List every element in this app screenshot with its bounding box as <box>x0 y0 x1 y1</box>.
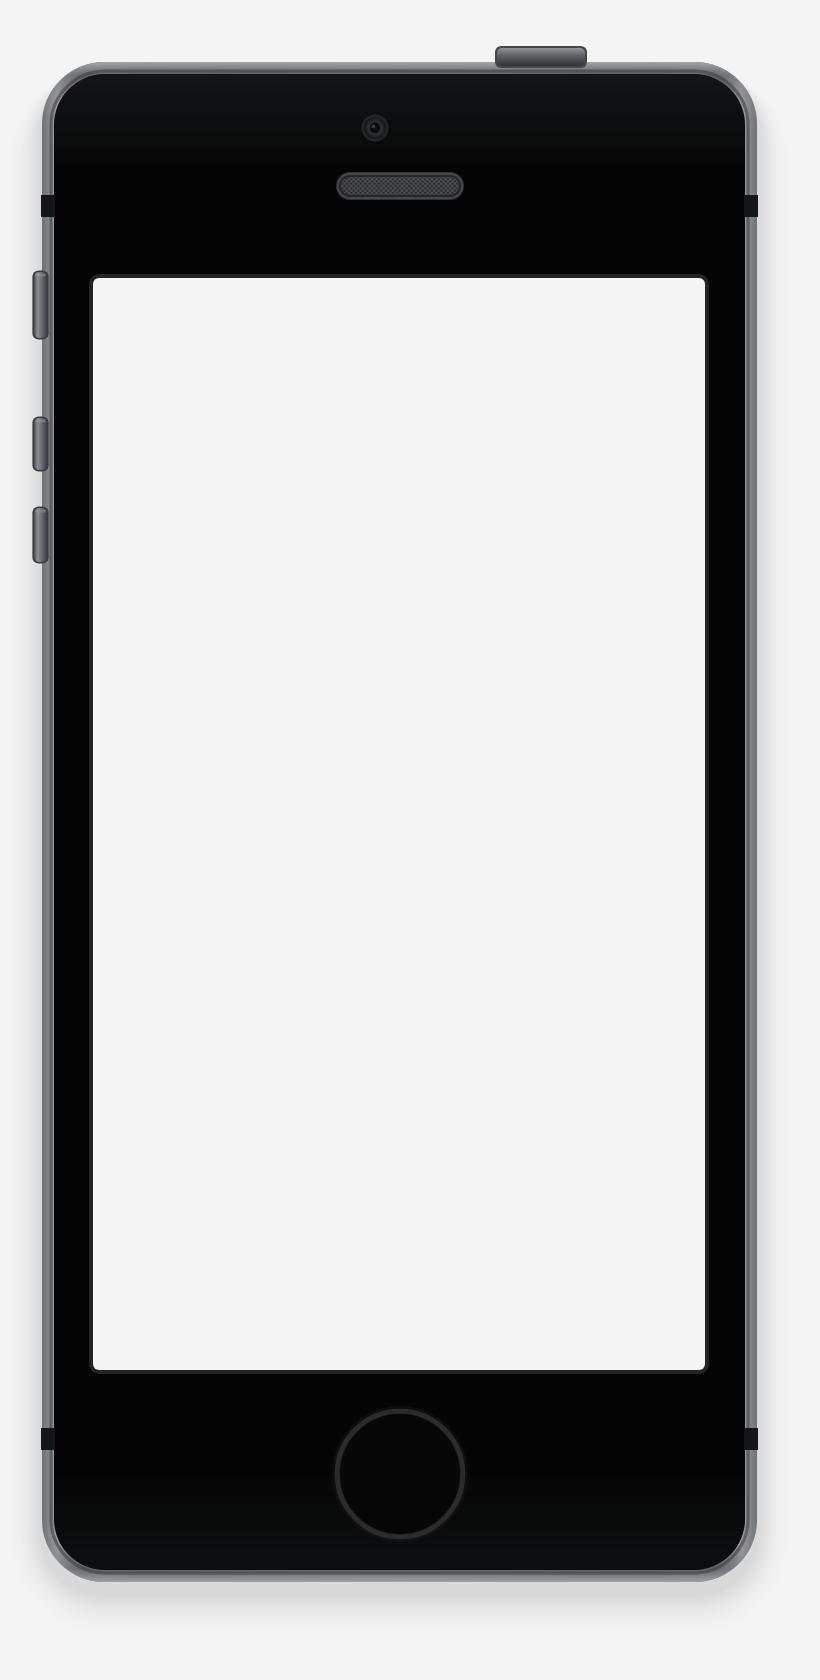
button[interactable]: iPhone device mockup with blank screen <box>0 0 820 1680</box>
